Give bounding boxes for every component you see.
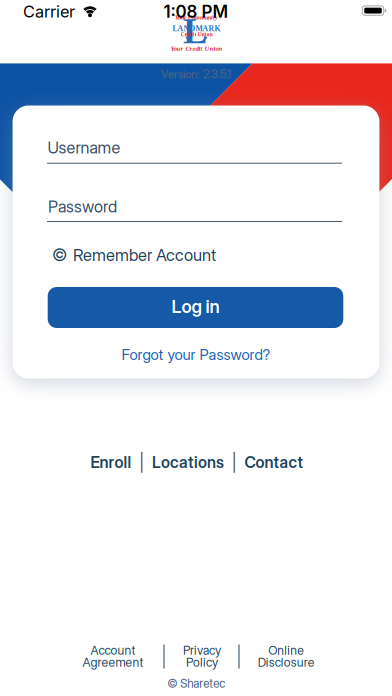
staticText: Online [268, 643, 304, 658]
staticText: © Sharetec [167, 676, 225, 691]
staticText: 1:08 PM [163, 1, 228, 22]
staticText: Account [90, 643, 135, 658]
staticText: L [183, 11, 207, 51]
staticText: Your Credit Union [170, 45, 222, 52]
staticText: LANDMARK [172, 24, 220, 33]
staticText: Credit Union [180, 31, 212, 37]
staticText: Forgot your Password? [121, 345, 270, 364]
staticText: Contact [245, 453, 304, 472]
staticText: Username [47, 138, 120, 157]
staticText: Privacy [183, 643, 221, 658]
staticText: Agreement [82, 655, 143, 670]
staticText: Remember Account [73, 245, 216, 265]
staticText: Policy [186, 655, 218, 670]
staticText: Carrier [23, 2, 75, 21]
staticText: Locations [152, 453, 224, 472]
staticText: Enroll [90, 453, 131, 472]
staticText: Log in [171, 296, 219, 317]
staticText: © [52, 244, 67, 265]
staticText: Your Community [175, 14, 218, 21]
staticText: Disclosure [258, 655, 315, 670]
staticText: Password [48, 197, 117, 216]
staticText: Version: 2.3.5.1 [161, 67, 231, 81]
